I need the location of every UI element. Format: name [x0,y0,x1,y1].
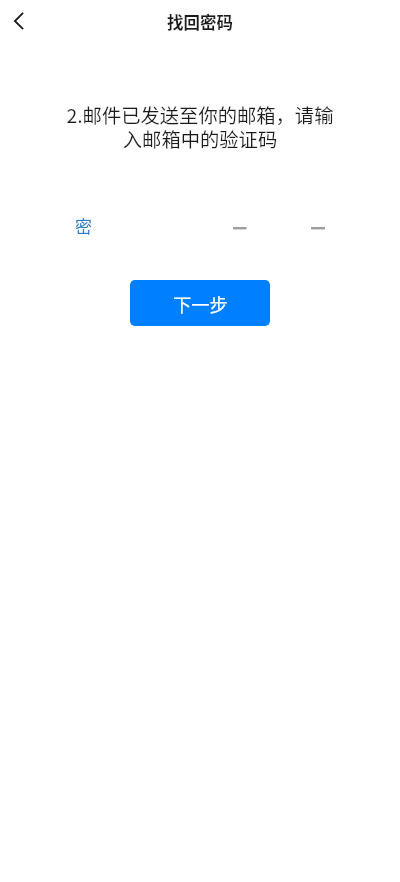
button[interactable]: 下一步 [130,280,270,326]
button[interactable]: 验证码输入框 2 [305,214,331,242]
button[interactable]: Back [0,2,38,40]
button[interactable]: 验证码输入框 1 [227,214,253,242]
button[interactable]: 验证码 [70,208,96,238]
staticText: 密 [75,213,92,238]
staticText: 下一步 [173,291,228,317]
staticText: 2.邮件已发送至你的邮箱，请输入邮箱中的验证码 [66,101,334,153]
staticText: 找回密码 [167,10,233,34]
